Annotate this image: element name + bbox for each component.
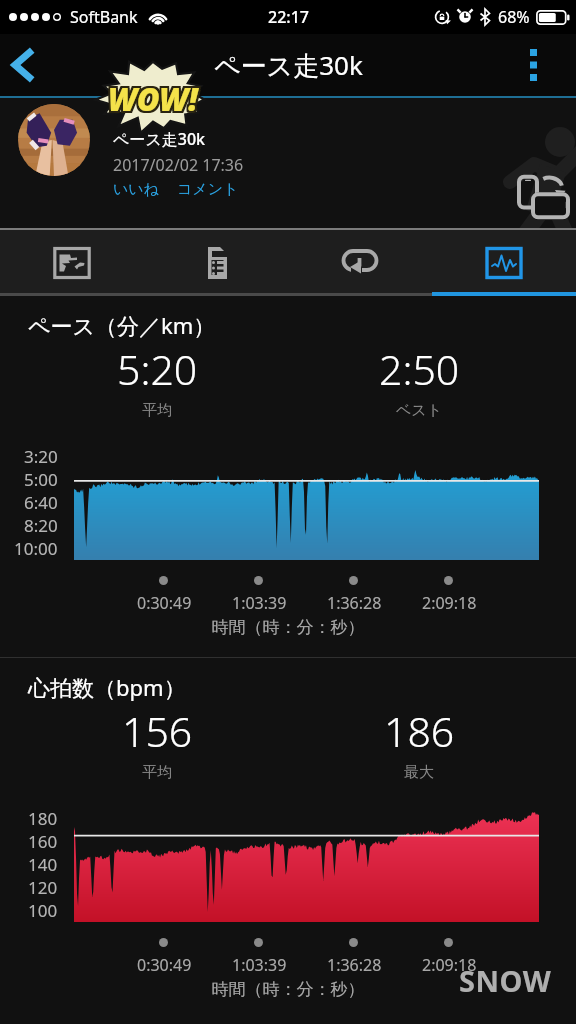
staticText: 5:20 xyxy=(117,341,198,397)
staticText: 1:36:28 xyxy=(327,592,382,614)
staticText: 160 xyxy=(28,830,58,853)
button[interactable]: コメント xyxy=(177,180,239,199)
staticText: WOW! xyxy=(110,80,200,122)
staticText: 平均 xyxy=(142,763,172,782)
staticText: 10:00 xyxy=(14,537,58,558)
staticText: 1:03:39 xyxy=(232,592,287,614)
staticText: WOW! xyxy=(108,78,198,120)
staticText: WOW! xyxy=(108,80,198,122)
staticText: 140 xyxy=(28,853,58,876)
button[interactable]: Back xyxy=(0,34,46,96)
staticText: ベスト xyxy=(396,401,443,420)
staticText: 22:17 xyxy=(268,6,309,28)
button[interactable]: Charts xyxy=(432,230,576,296)
staticText: WOW! xyxy=(106,80,196,122)
staticText: 時間（時：分：秒） xyxy=(0,979,576,1000)
staticText: ペース走30k xyxy=(113,128,205,150)
staticText: コメント xyxy=(177,180,239,199)
staticText: いいね xyxy=(113,180,160,199)
staticText: 156 xyxy=(122,703,193,759)
staticText: WOW! xyxy=(110,78,200,120)
staticText: 2:09:18 xyxy=(422,592,477,614)
staticText: WOW! xyxy=(110,76,200,118)
staticText: 最大 xyxy=(404,763,434,782)
staticText: 186 xyxy=(384,703,455,759)
staticText: 5:00 xyxy=(24,468,58,491)
staticText: 0:30:49 xyxy=(137,592,192,614)
staticText: 8:20 xyxy=(24,514,58,537)
staticText: 平均 xyxy=(142,401,172,420)
staticText: 1:36:28 xyxy=(327,954,382,976)
staticText: 2:09:18 xyxy=(422,954,477,976)
button[interactable] xyxy=(18,104,90,176)
staticText: 3:20 xyxy=(24,445,58,468)
staticText: 2017/02/02 17:36 xyxy=(113,154,244,176)
staticText: WOW! xyxy=(106,78,196,120)
staticText: WOW! xyxy=(108,76,198,118)
button[interactable]: Rotate screen xyxy=(515,172,571,222)
staticText: ペース走30k xyxy=(214,47,363,83)
button[interactable]: More options xyxy=(490,34,576,96)
staticText: SNOW xyxy=(459,961,552,1000)
staticText: SoftBank xyxy=(70,6,138,28)
button[interactable]: Details xyxy=(144,230,288,296)
staticText: 時間（時：分：秒） xyxy=(0,617,576,638)
staticText: WOW! xyxy=(106,76,196,118)
button[interactable]: いいね xyxy=(113,180,160,199)
staticText: 0:30:49 xyxy=(137,954,192,976)
staticText: 心拍数（bpm） xyxy=(28,672,186,702)
staticText: 2:50 xyxy=(379,341,460,397)
staticText: 120 xyxy=(28,876,58,899)
button[interactable]: Laps xyxy=(288,230,432,296)
button[interactable]: Map xyxy=(0,230,144,296)
staticText: 6:40 xyxy=(24,491,58,514)
staticText: 68% xyxy=(498,6,530,28)
staticText: ペース（分／km） xyxy=(28,310,216,340)
staticText: 1:03:39 xyxy=(232,954,287,976)
staticText: 100 xyxy=(28,899,58,920)
staticText: 180 xyxy=(28,807,58,830)
